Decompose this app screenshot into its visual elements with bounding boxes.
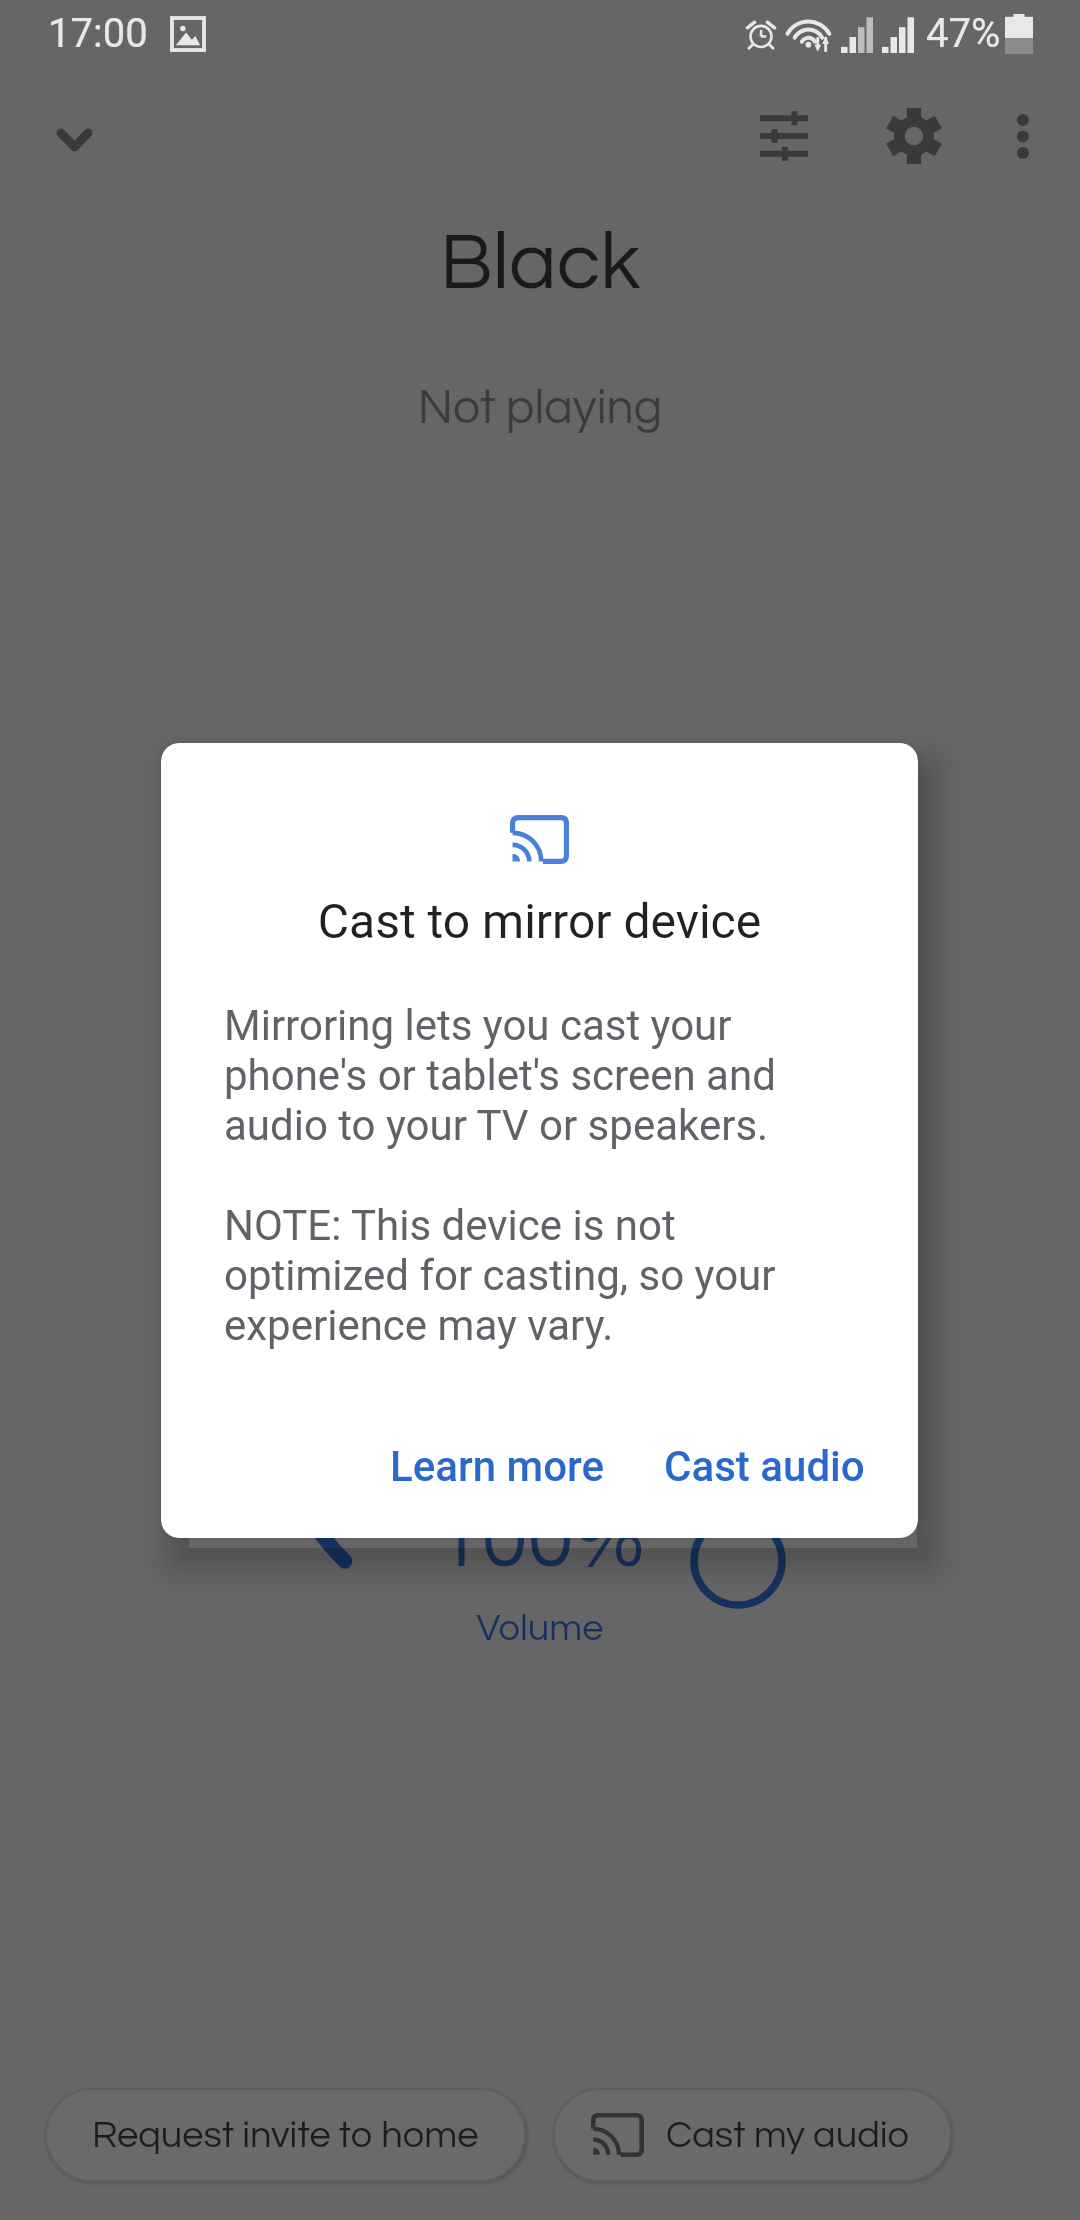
staticText: Cast my audio <box>666 2116 910 2155</box>
staticText: Black <box>0 222 1080 304</box>
button[interactable]: Learn more <box>376 1432 618 1501</box>
button[interactable]: Cast my audio <box>553 2088 952 2182</box>
staticText: Volume <box>0 1609 1080 1648</box>
staticText: 17:00 <box>48 10 148 57</box>
staticText: Not playing <box>0 384 1080 433</box>
button[interactable]: Equalizer <box>732 84 836 188</box>
staticText: 100% <box>0 1497 1080 1584</box>
staticText: Request invite to home <box>92 2116 479 2155</box>
button[interactable]: Request invite to home <box>45 2088 526 2182</box>
button[interactable]: Cast audio <box>650 1432 879 1501</box>
button[interactable]: Settings <box>862 84 966 188</box>
staticText: 47% <box>926 10 1001 57</box>
staticText: Cast audio <box>664 1442 865 1491</box>
staticText: Learn more <box>390 1442 604 1491</box>
button[interactable]: More options <box>971 84 1075 188</box>
staticText: Cast to mirror device <box>161 893 918 949</box>
button[interactable]: Collapse <box>22 88 126 192</box>
button[interactable]: Volume <box>232 1058 848 1674</box>
staticText: Mirroring lets you cast your phone's or … <box>224 1001 864 1350</box>
